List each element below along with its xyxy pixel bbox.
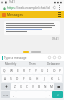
button[interactable]: More options (57, 5, 62, 10)
button[interactable]: X (18, 83, 24, 90)
button[interactable]: I (45, 67, 51, 74)
button[interactable]: P (57, 67, 63, 74)
button[interactable]: Reload (52, 5, 57, 10)
staticText: Delaware (47, 62, 60, 66)
button[interactable]: Z (11, 83, 18, 90)
staticText: Monthly (5, 62, 17, 66)
staticText: F (23, 77, 25, 81)
staticText: ?123 (3, 93, 9, 96)
button[interactable]: Site information (2, 6, 6, 10)
staticText: Type a message (4, 56, 27, 60)
button[interactable]: Menu (57, 12, 62, 17)
button[interactable]: Tab (31, 51, 41, 53)
staticText: K (51, 77, 53, 81)
button[interactable]: https (7, 6, 52, 10)
button[interactable]: Attach (52, 55, 57, 60)
button[interactable]: Y (33, 67, 39, 74)
button[interactable]: L (55, 75, 62, 82)
button[interactable]: S (8, 75, 14, 82)
button[interactable]: M (48, 83, 54, 90)
button[interactable]: G (27, 75, 34, 82)
button[interactable]: J (41, 75, 48, 82)
button[interactable]: Type a message (2, 56, 47, 60)
staticText: I (47, 69, 49, 73)
button[interactable]: Monthly (0, 61, 22, 67)
staticText: . (49, 93, 50, 97)
button[interactable]: K (48, 75, 55, 82)
button[interactable]: W (8, 67, 15, 74)
staticText: Q (3, 69, 6, 73)
staticText: O (53, 69, 56, 73)
staticText: R (23, 69, 25, 73)
button[interactable]: H (34, 75, 41, 82)
staticText: J (44, 77, 45, 81)
button[interactable]: Shift (1, 83, 11, 90)
staticText: M (50, 85, 53, 89)
button[interactable]: V (30, 83, 36, 90)
staticText: C (26, 85, 29, 89)
button[interactable]: Then (22, 61, 43, 67)
button[interactable]: App icon (2, 13, 6, 17)
staticText: B (38, 85, 41, 89)
button[interactable]: Send (57, 55, 62, 60)
button[interactable]: N (42, 83, 48, 90)
button[interactable]: F (20, 75, 27, 82)
staticText: T (29, 69, 31, 73)
staticText: V (32, 85, 34, 89)
button[interactable]: Tab (23, 51, 29, 53)
staticText: https (7, 6, 15, 10)
staticText: W (10, 69, 13, 73)
staticText: G (29, 77, 32, 81)
staticText: P (59, 69, 61, 73)
staticText: Messages (7, 12, 23, 17)
staticText: , (13, 93, 14, 97)
staticText: 09:41 (52, 37, 59, 41)
staticText: 9:41 (9, 0, 15, 4)
button[interactable]: B (36, 83, 42, 90)
button[interactable]: Delaware (43, 61, 64, 67)
staticText: U (41, 69, 44, 73)
staticText: ://web.example/chat/id (15, 6, 50, 10)
button[interactable]: D (14, 75, 20, 82)
button[interactable]: U (39, 67, 45, 74)
button[interactable]: T (27, 67, 33, 74)
button[interactable]: Emoji (47, 55, 52, 60)
staticText: Y (35, 69, 37, 73)
staticText: A (4, 77, 7, 81)
button[interactable]: C (24, 83, 30, 90)
button[interactable]: Backspace (54, 83, 63, 90)
button[interactable]: Symbols (1, 91, 10, 98)
staticText: Then (29, 62, 36, 66)
button[interactable]: A (2, 75, 8, 82)
button[interactable]: Q (1, 67, 8, 74)
staticText: N (44, 85, 47, 89)
button[interactable]: Comma (10, 91, 16, 98)
staticText: X (20, 85, 22, 89)
staticText: E (17, 69, 19, 73)
button[interactable]: Period (46, 91, 52, 98)
button[interactable]: E (15, 67, 21, 74)
staticText: L (58, 77, 60, 81)
staticText: H (36, 77, 39, 81)
staticText: Z (14, 85, 16, 89)
staticText: D (16, 77, 19, 81)
button[interactable]: Enter (52, 91, 63, 98)
button[interactable]: R (21, 67, 27, 74)
button[interactable] (4, 21, 60, 35)
button[interactable]: O (51, 67, 57, 74)
staticText: S (10, 77, 12, 81)
